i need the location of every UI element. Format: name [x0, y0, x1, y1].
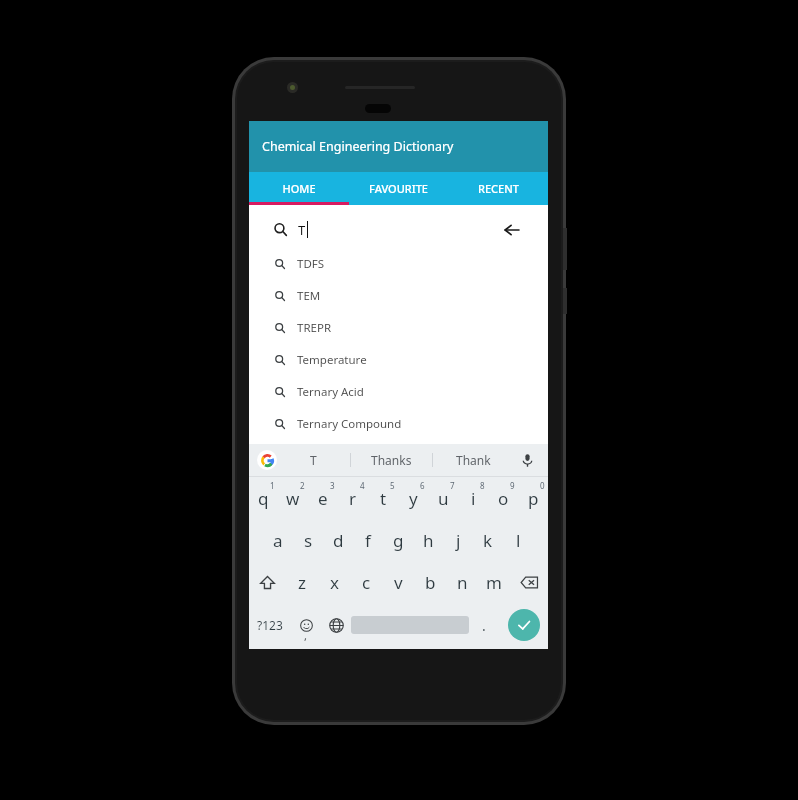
- button[interactable]: u: [428, 477, 458, 519]
- button[interactable]: w: [278, 477, 308, 519]
- button[interactable]: d: [323, 519, 353, 561]
- button[interactable]: TDFS: [275, 248, 540, 280]
- staticText: t: [380, 487, 387, 510]
- staticText: w: [286, 487, 300, 510]
- button[interactable]: j: [443, 519, 473, 561]
- button[interactable]: Temperature: [275, 344, 540, 376]
- staticText: 2: [300, 480, 305, 491]
- staticText: n: [457, 571, 468, 594]
- staticText: f: [365, 529, 371, 552]
- staticText: Thank: [456, 452, 491, 468]
- staticText: d: [333, 529, 344, 552]
- staticText: y: [409, 487, 418, 510]
- button[interactable]: f: [353, 519, 383, 561]
- staticText: 4: [360, 480, 365, 491]
- button[interactable]: e: [308, 477, 338, 519]
- staticText: HOME: [282, 181, 316, 196]
- button[interactable]: l: [503, 519, 533, 561]
- staticText: Ternary Acid: [297, 384, 364, 400]
- staticText: z: [298, 571, 306, 594]
- button[interactable]: g: [383, 519, 413, 561]
- button[interactable]: Google: [257, 450, 277, 470]
- staticText: TDFS: [297, 256, 325, 272]
- button[interactable]: z: [286, 561, 318, 603]
- button[interactable]: Back: [501, 219, 523, 241]
- button[interactable]: v: [382, 561, 414, 603]
- button[interactable]: HOME: [249, 172, 348, 205]
- staticText: 6: [420, 480, 425, 491]
- staticText: TEM: [297, 288, 321, 304]
- staticText: ,: [304, 628, 307, 643]
- button[interactable]: Change language: [321, 603, 351, 647]
- button[interactable]: p: [518, 477, 548, 519]
- button[interactable]: q: [249, 477, 278, 519]
- staticText: .: [482, 616, 486, 635]
- staticText: RECENT: [478, 181, 519, 196]
- button[interactable]: Chemical Engineering Dictionary: [249, 121, 548, 172]
- button[interactable]: Shift: [249, 561, 286, 603]
- button[interactable]: TEM: [275, 280, 540, 312]
- staticText: ?123: [257, 617, 283, 633]
- button[interactable]: Backspace: [510, 561, 548, 603]
- staticText: l: [516, 529, 521, 552]
- button[interactable]: r: [338, 477, 368, 519]
- staticText: 1: [270, 480, 275, 491]
- button[interactable]: a: [263, 519, 293, 561]
- staticText: h: [423, 529, 434, 552]
- button[interactable]: TREPR: [275, 312, 540, 344]
- staticText: x: [330, 571, 339, 594]
- staticText: 0: [540, 480, 545, 491]
- staticText: Thanks: [371, 452, 412, 468]
- staticText: a: [273, 529, 283, 552]
- staticText: 7: [450, 480, 455, 491]
- button[interactable]: Ternary Compound: [275, 408, 540, 440]
- staticText: v: [394, 571, 403, 594]
- staticText: 3: [330, 480, 335, 491]
- button[interactable]: c: [350, 561, 382, 603]
- button[interactable]: m: [478, 561, 510, 603]
- button[interactable]: k: [473, 519, 503, 561]
- button[interactable]: y: [398, 477, 428, 519]
- button[interactable]: s: [293, 519, 323, 561]
- staticText: p: [528, 487, 539, 510]
- staticText: T: [298, 221, 306, 239]
- staticText: Ternary Compound: [297, 416, 402, 432]
- button[interactable]: Emoji: [291, 603, 321, 647]
- button[interactable]: RECENT: [448, 172, 548, 205]
- button[interactable]: Thank: [433, 444, 514, 476]
- staticText: T: [310, 452, 317, 468]
- button[interactable]: Thanks: [351, 444, 432, 476]
- button[interactable]: n: [446, 561, 478, 603]
- staticText: b: [425, 571, 436, 594]
- staticText: FAVOURITE: [369, 181, 428, 196]
- button[interactable]: Voice input: [514, 444, 540, 476]
- button[interactable]: FAVOURITE: [348, 172, 448, 205]
- button[interactable]: x: [318, 561, 350, 603]
- button[interactable]: Enter: [508, 609, 540, 641]
- button[interactable]: h: [413, 519, 443, 561]
- button[interactable]: o: [488, 477, 518, 519]
- staticText: c: [362, 571, 371, 594]
- staticText: k: [483, 529, 493, 552]
- staticText: m: [486, 571, 502, 594]
- staticText: TREPR: [297, 320, 332, 336]
- button[interactable]: ?123: [249, 603, 291, 647]
- staticText: r: [349, 487, 357, 510]
- staticText: j: [456, 529, 461, 552]
- staticText: e: [318, 487, 328, 510]
- staticText: u: [438, 487, 449, 510]
- button[interactable]: T: [277, 444, 350, 476]
- button[interactable]: Ternary Acid: [275, 376, 540, 408]
- button[interactable]: .: [469, 603, 499, 647]
- staticText: q: [258, 487, 269, 510]
- button[interactable]: T: [265, 211, 532, 248]
- staticText: 9: [510, 480, 515, 491]
- button[interactable]: t: [368, 477, 398, 519]
- button[interactable]: i: [458, 477, 488, 519]
- staticText: Temperature: [297, 352, 367, 368]
- staticText: g: [393, 529, 404, 552]
- staticText: 8: [480, 480, 485, 491]
- button[interactable]: b: [414, 561, 446, 603]
- staticText: 5: [390, 480, 395, 491]
